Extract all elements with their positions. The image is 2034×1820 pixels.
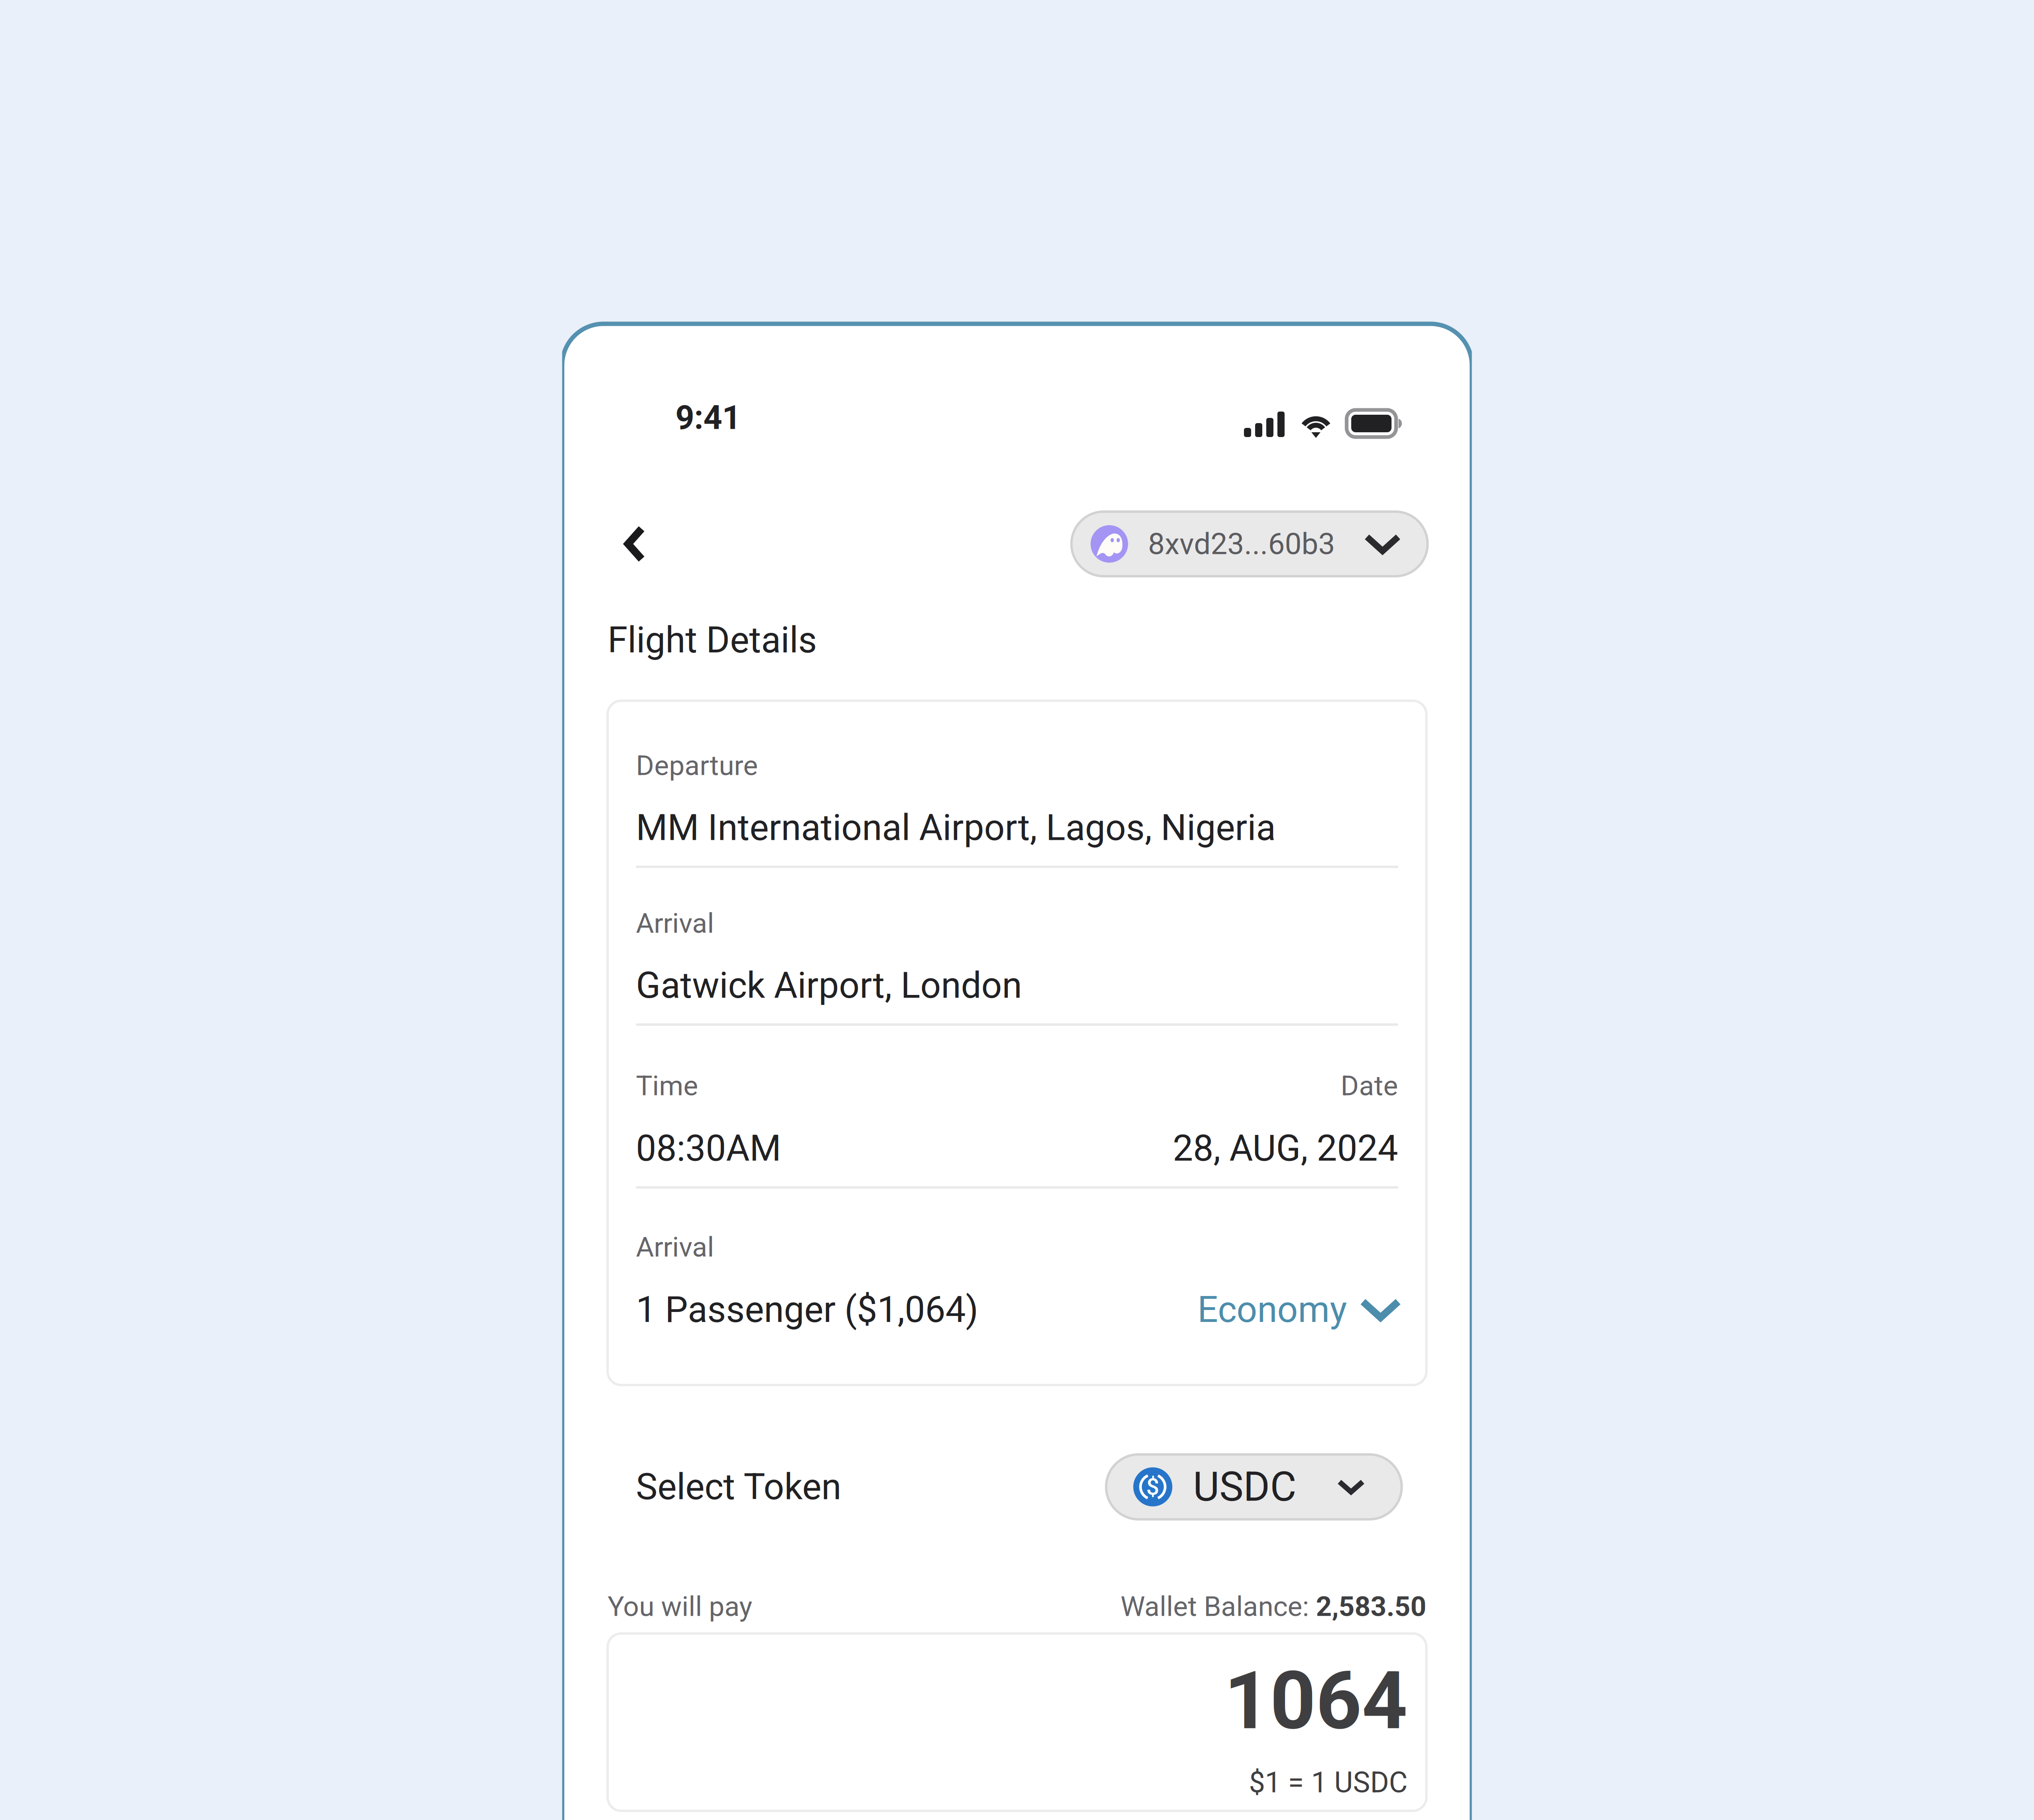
staticText: Wallet Balance: [1120,1590,1316,1623]
staticText: Gatwick Airport, London [636,964,1022,1007]
staticText: 08:30AM [636,1127,781,1170]
staticText: 2,583.50 [1316,1590,1426,1623]
staticText: Time [636,1070,698,1102]
staticText: Departure [636,749,758,782]
staticText: Arrival [636,907,714,940]
staticText: $1 = 1 USDC [1249,1766,1408,1799]
button[interactable]: Back [562,511,669,577]
staticText: MM International Airport, Lagos, Nigeria [636,807,1276,849]
staticText: 9:41 [675,398,741,437]
staticText: 1064 [1224,1654,1408,1748]
staticText: USDC [1193,1463,1296,1511]
button[interactable]: USDC [1106,1454,1402,1519]
staticText: Economy [1197,1288,1347,1331]
staticText: You will pay [608,1590,752,1623]
staticText: 1 Passenger ($1,064) [636,1288,979,1331]
staticText: Flight Details [608,619,817,661]
staticText: 28, AUG, 2024 [1173,1127,1398,1170]
staticText: Select Token [636,1466,841,1508]
staticText: 8xvd23...60b3 [1148,526,1335,561]
button[interactable]: 8xvd23...60b3 [1071,512,1428,576]
staticText: Date [1341,1070,1398,1102]
button[interactable]: Economy [1197,1288,1398,1331]
staticText: Arrival [636,1231,714,1263]
